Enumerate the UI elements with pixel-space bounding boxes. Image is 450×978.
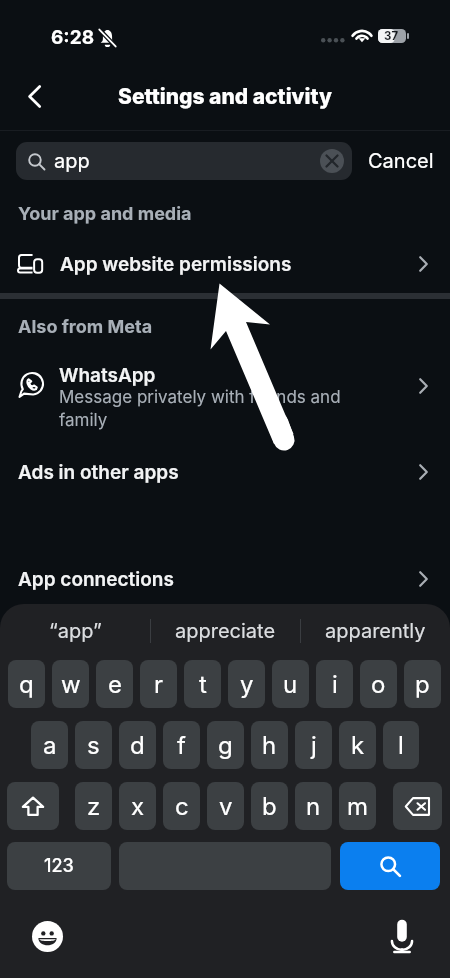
staticText: t xyxy=(199,670,207,699)
button[interactable]: f xyxy=(163,721,200,769)
button[interactable]: p xyxy=(404,660,441,708)
button[interactable]: Back xyxy=(14,76,54,116)
button[interactable]: g xyxy=(207,721,244,769)
staticText: f xyxy=(177,731,186,760)
button[interactable]: r xyxy=(140,660,177,708)
button[interactable]: App connections xyxy=(0,555,450,603)
button[interactable]: w xyxy=(52,660,89,708)
staticText: d xyxy=(130,731,145,760)
staticText: n xyxy=(306,792,321,821)
button[interactable]: y xyxy=(228,660,265,708)
staticText: y xyxy=(240,670,254,699)
button[interactable]: 123 xyxy=(7,842,111,890)
staticText: i xyxy=(332,670,338,699)
staticText: j xyxy=(311,731,317,760)
staticText: Settings and activity xyxy=(118,84,332,109)
button[interactable]: o xyxy=(360,660,397,708)
button[interactable]: app xyxy=(16,142,352,180)
button[interactable]: e xyxy=(96,660,133,708)
staticText: Ads in other apps xyxy=(18,461,179,484)
button[interactable]: Emoji xyxy=(27,916,67,956)
button[interactable]: Ads in other apps xyxy=(0,448,450,496)
staticText: Also from Meta xyxy=(18,316,153,338)
button[interactable]: Cancel xyxy=(352,142,448,180)
staticText: Message privately with friends and famil… xyxy=(59,387,355,430)
staticText: appreciate xyxy=(175,619,276,643)
button[interactable]: u xyxy=(272,660,309,708)
button[interactable]: v xyxy=(207,782,244,830)
button[interactable]: c xyxy=(163,782,200,830)
staticText: z xyxy=(87,792,101,821)
button[interactable]: m xyxy=(339,782,376,830)
button[interactable]: d xyxy=(119,721,156,769)
staticText: l xyxy=(398,731,404,760)
staticText: q xyxy=(19,670,34,699)
button[interactable]: s xyxy=(75,721,112,769)
button[interactable]: k xyxy=(339,721,376,769)
staticText: o xyxy=(371,670,386,699)
staticText: Your app and media xyxy=(18,203,192,225)
staticText: v xyxy=(219,792,233,821)
staticText: k xyxy=(351,731,365,760)
staticText: WhatsApp xyxy=(59,364,156,387)
button[interactable]: Backspace xyxy=(393,782,442,830)
staticText: x xyxy=(131,792,145,821)
staticText: c xyxy=(175,792,189,821)
staticText: 123 xyxy=(44,855,74,877)
button[interactable]: Search xyxy=(340,842,440,890)
staticText: r xyxy=(154,670,164,699)
button[interactable]: i xyxy=(316,660,353,708)
staticText: e xyxy=(108,670,122,699)
button[interactable]: Voice input xyxy=(382,916,422,956)
button[interactable]: l xyxy=(383,721,419,769)
staticText: b xyxy=(262,792,277,821)
button[interactable]: Clear text xyxy=(320,149,344,173)
staticText: w xyxy=(61,670,81,699)
button[interactable]: apparently xyxy=(301,604,450,658)
button[interactable]: b xyxy=(251,782,288,830)
staticText: Cancel xyxy=(368,149,434,173)
staticText: g xyxy=(218,731,233,760)
staticText: app xyxy=(54,149,90,173)
staticText: s xyxy=(87,731,100,760)
button[interactable]: h xyxy=(251,721,288,769)
staticText: p xyxy=(415,670,430,699)
staticText: 6:28 xyxy=(51,26,95,49)
staticText: u xyxy=(283,670,298,699)
staticText: m xyxy=(347,792,369,821)
button[interactable]: a xyxy=(31,721,68,769)
button[interactable]: z xyxy=(75,782,112,830)
staticText: 37 xyxy=(384,29,399,43)
button[interactable]: “app” xyxy=(0,604,150,658)
button[interactable]: Shift xyxy=(7,782,59,830)
button[interactable]: x xyxy=(119,782,156,830)
staticText: a xyxy=(43,731,57,760)
button[interactable]: j xyxy=(295,721,332,769)
button[interactable]: appreciate xyxy=(151,604,300,658)
staticText: apparently xyxy=(325,619,426,643)
staticText: App website permissions xyxy=(60,253,292,276)
button[interactable]: App website permissions xyxy=(0,240,450,288)
button[interactable]: t xyxy=(184,660,221,708)
staticText: App connections xyxy=(18,568,174,591)
button[interactable]: q xyxy=(8,660,45,708)
staticText: h xyxy=(262,731,277,760)
button[interactable]: n xyxy=(295,782,332,830)
button[interactable]: WhatsApp xyxy=(0,352,450,444)
staticText: “app” xyxy=(49,619,102,643)
